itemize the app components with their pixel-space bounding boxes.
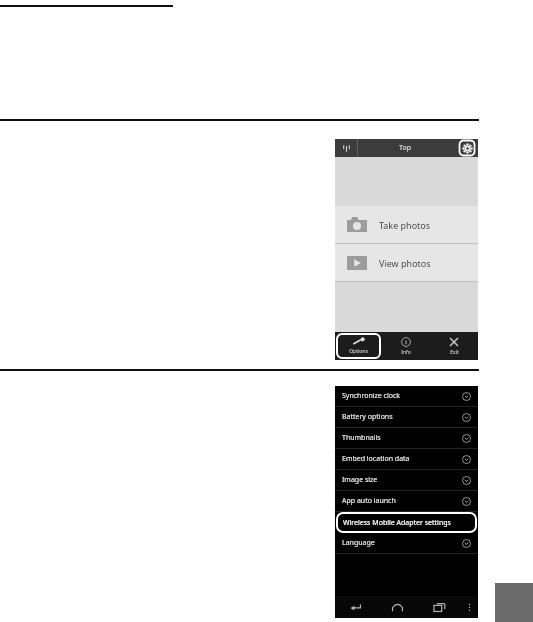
staticText: Embed location data bbox=[342, 454, 410, 464]
staticText: App auto launch bbox=[342, 496, 396, 506]
staticText: Top bbox=[399, 143, 411, 153]
button[interactable]: Thumbnails bbox=[335, 428, 478, 448]
button[interactable]: Battery options bbox=[335, 407, 478, 427]
button[interactable]: Home bbox=[376, 596, 418, 618]
staticText: Thumbnails bbox=[342, 433, 381, 443]
button[interactable]: App auto launch bbox=[335, 491, 478, 511]
staticText: Battery options bbox=[342, 412, 393, 422]
staticText: Options bbox=[349, 348, 368, 355]
button[interactable]: View photos bbox=[335, 244, 478, 281]
button[interactable]: Embed location data bbox=[335, 449, 478, 469]
staticText: Exit bbox=[450, 349, 459, 356]
staticText: View photos bbox=[379, 257, 431, 269]
button[interactable]: Back bbox=[335, 596, 376, 618]
button[interactable]: Take photos bbox=[335, 206, 478, 243]
staticText: Info bbox=[401, 349, 411, 356]
staticText: Image size bbox=[342, 475, 378, 485]
button[interactable]: Image size bbox=[335, 470, 478, 490]
staticText: Synchronize clock bbox=[342, 391, 401, 401]
button[interactable]: Language bbox=[335, 533, 478, 553]
button[interactable]: Settings bbox=[459, 140, 475, 156]
button[interactable]: Synchronize clock bbox=[335, 386, 478, 406]
staticText: Take photos bbox=[379, 219, 431, 231]
button[interactable]: More options bbox=[460, 596, 478, 618]
button[interactable]: Wireless Mobile Adapter settings bbox=[336, 512, 477, 533]
button[interactable]: Exit bbox=[430, 332, 478, 360]
button[interactable]: Info bbox=[382, 332, 430, 360]
staticText: Language bbox=[342, 538, 375, 548]
button[interactable]: Recents bbox=[418, 596, 460, 618]
staticText: Wireless Mobile Adapter settings bbox=[343, 518, 451, 528]
button[interactable]: Options bbox=[336, 333, 381, 359]
